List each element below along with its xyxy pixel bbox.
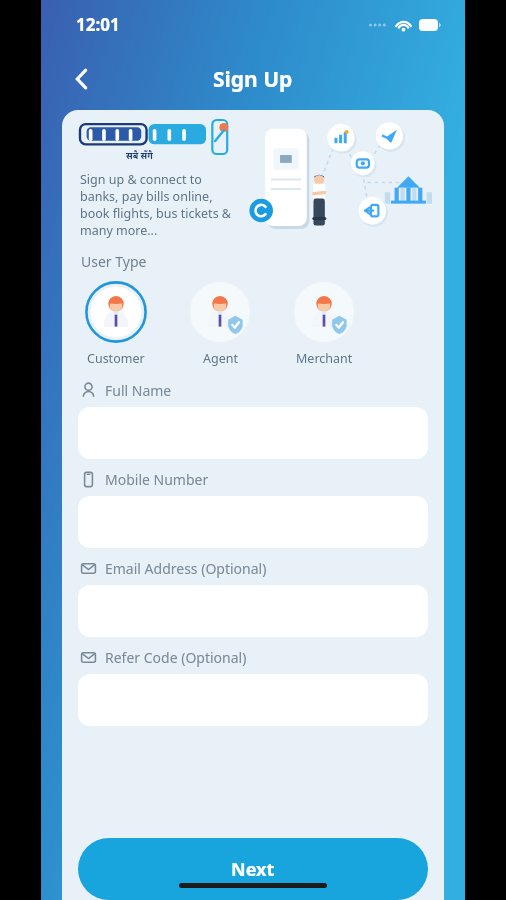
button[interactable]: Customer bbox=[78, 281, 154, 367]
staticText: 12:01 bbox=[76, 13, 120, 36]
button[interactable]: Next bbox=[78, 838, 428, 900]
staticText: Customer bbox=[87, 350, 145, 367]
staticText: Email Address (Optional) bbox=[105, 559, 267, 578]
staticText: Mobile Number bbox=[105, 470, 209, 489]
button[interactable]: Back bbox=[59, 57, 103, 101]
button[interactable]: Merchant bbox=[286, 281, 362, 367]
staticText: Next bbox=[231, 857, 275, 882]
staticText: Full Name bbox=[105, 381, 172, 400]
staticText: सबै सँगै bbox=[126, 149, 153, 161]
staticText: Sign Up bbox=[213, 65, 293, 94]
staticText: Refer Code (Optional) bbox=[105, 648, 247, 667]
staticText: User Type bbox=[81, 252, 147, 271]
staticText: Merchant bbox=[296, 350, 353, 367]
staticText: Agent bbox=[203, 350, 238, 367]
staticText: Sign up & connect to banks, pay bills on… bbox=[80, 171, 232, 239]
button[interactable]: Agent bbox=[182, 281, 258, 367]
